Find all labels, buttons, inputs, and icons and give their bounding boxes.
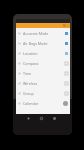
staticText: Compass (23, 61, 39, 66)
button[interactable]: Search (16, 23, 70, 28)
staticText: Location (23, 51, 38, 56)
button[interactable]: Air Bags Mode (16, 38, 70, 48)
button[interactable]: Home (39, 115, 44, 122)
button[interactable]: Back (26, 115, 31, 122)
button[interactable]: Group (16, 88, 70, 98)
button[interactable]: Compass (16, 58, 70, 68)
button[interactable]: More options (66, 23, 69, 28)
button[interactable]: Recents (52, 115, 57, 122)
staticText: Accurate Mode (23, 31, 49, 36)
button[interactable]: Location (16, 48, 70, 58)
staticText: Time (23, 71, 32, 76)
button[interactable]: Calendar (16, 98, 70, 108)
staticText: Calendar (23, 101, 39, 106)
button[interactable]: Accurate Mode (16, 28, 70, 38)
button[interactable]: Wireless (16, 78, 70, 88)
button[interactable]: Search (62, 23, 66, 28)
staticText: Group (23, 91, 34, 96)
button[interactable]: Time (16, 68, 70, 78)
staticText: Air Bags Mode (23, 41, 48, 46)
staticText: Wireless (23, 81, 38, 86)
